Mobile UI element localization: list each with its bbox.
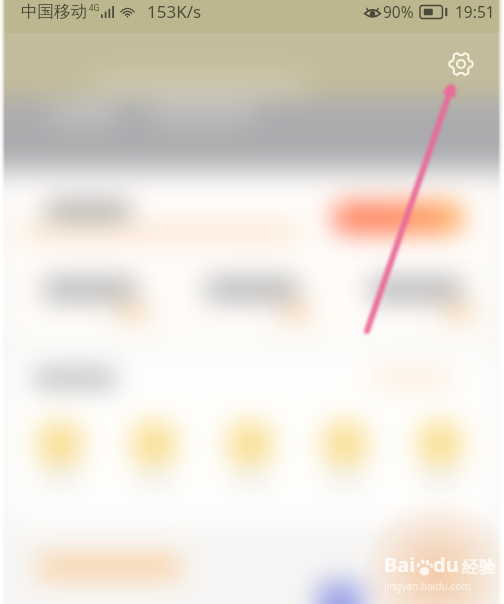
staticText: jingyan.baidu.com (384, 579, 471, 593)
button[interactable]: Settings (441, 44, 481, 84)
staticText: 经验 (462, 557, 496, 578)
staticText: 4G (89, 2, 100, 13)
staticText: Bai (384, 551, 416, 578)
staticText: 153K/s (147, 0, 202, 23)
staticText: 19:51 (455, 1, 495, 22)
staticText: 中国移动 (21, 1, 87, 22)
staticText: 90% (383, 1, 414, 22)
staticText: du (433, 551, 459, 578)
